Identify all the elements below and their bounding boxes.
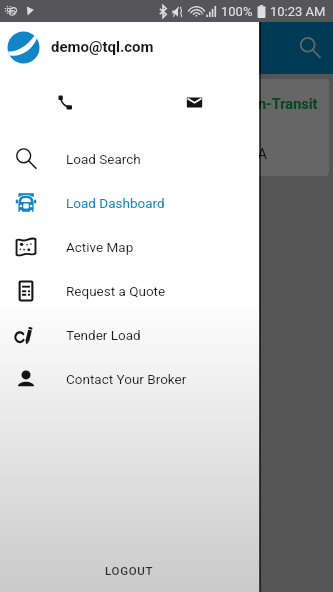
staticText: Contact Your Broker [66, 371, 187, 387]
staticText: Active Map [66, 239, 134, 255]
button[interactable]: Load 6172334 - In-Transit [4, 79, 329, 176]
staticText: CINCINNATI, OH → ATLANTA, GA [54, 146, 267, 162]
staticText: Load 6172334 - In-Transit [147, 96, 318, 113]
staticText: 10:23 AM [270, 4, 326, 19]
staticText: Load Dashboard [66, 195, 165, 211]
staticText: Tender Load [66, 327, 141, 343]
staticText: 100% [221, 4, 253, 19]
button[interactable]: Email [130, 77, 259, 125]
button[interactable]: Search [292, 30, 328, 66]
staticText: Request a Quote [66, 283, 166, 299]
button[interactable]: Tender Load [0, 313, 259, 357]
staticText: demo@tql.com [51, 38, 154, 56]
button[interactable]: Load Dashboard [0, 181, 259, 225]
staticText: LOGOUT [105, 564, 154, 577]
staticText: Load Search [66, 151, 141, 167]
button[interactable]: Contact Your Broker [0, 357, 259, 401]
button[interactable]: Call [0, 77, 130, 125]
button[interactable]: Load Search [0, 137, 259, 181]
button[interactable]: Request a Quote [0, 269, 259, 313]
button[interactable]: Active Map [0, 225, 259, 269]
button[interactable]: LOGOUT [0, 548, 259, 592]
